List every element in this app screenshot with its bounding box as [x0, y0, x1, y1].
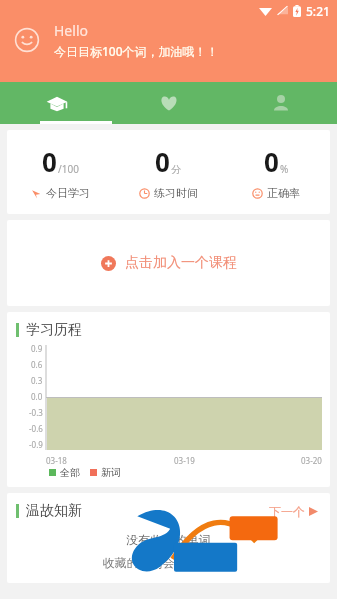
staticText: 学习历程: [26, 321, 82, 339]
staticText: 0.6: [31, 359, 43, 370]
staticText: 温故知新: [26, 502, 82, 520]
button[interactable]: Courses: [0, 82, 113, 124]
staticText: 5:21: [306, 3, 330, 19]
staticText: -0.6: [29, 423, 43, 434]
staticText: 0: [155, 144, 170, 179]
button[interactable]: 点击加入一个课程: [7, 220, 330, 306]
staticText: 03-18: [46, 455, 67, 466]
staticText: 今日学习: [46, 186, 90, 200]
staticText: 新词: [101, 466, 121, 479]
button[interactable]: Favorites: [113, 82, 225, 124]
staticText: 全部: [60, 466, 80, 479]
staticText: 03-19: [174, 455, 195, 466]
staticText: 0.0: [31, 391, 43, 402]
button[interactable]: 0: [7, 138, 114, 206]
staticText: 0.9: [31, 343, 43, 354]
staticText: 0.3: [31, 375, 43, 386]
staticText: %: [280, 162, 289, 176]
button[interactable]: 下一个: [269, 504, 318, 519]
staticText: -0.3: [29, 407, 43, 418]
staticText: 今日目标100个词，加油哦！！: [54, 43, 219, 59]
button[interactable]: 0: [114, 138, 222, 206]
staticText: 没有收藏的单词: [7, 532, 330, 547]
staticText: /100: [58, 162, 79, 176]
staticText: 分: [171, 163, 181, 176]
staticText: 正确率: [267, 186, 300, 200]
button[interactable]: 0: [222, 138, 330, 206]
staticText: 点击加入一个课程: [125, 254, 237, 272]
staticText: Hello: [54, 21, 88, 40]
staticText: 0: [42, 144, 57, 179]
staticText: 收藏的单词会显示在这里: [7, 555, 330, 570]
button[interactable]: Profile: [225, 82, 337, 124]
staticText: 练习时间: [154, 186, 198, 200]
staticText: 03-20: [301, 455, 322, 466]
staticText: -0.9: [29, 439, 43, 450]
staticText: 下一个: [269, 504, 305, 519]
staticText: 0: [264, 144, 279, 179]
